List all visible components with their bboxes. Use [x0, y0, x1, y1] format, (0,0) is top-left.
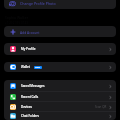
staticText: Devices [21, 105, 32, 109]
button[interactable]: Change Profile Photo [4, 0, 116, 9]
button[interactable]: My Profile [4, 43, 116, 55]
button[interactable]: Chat Folders [4, 112, 116, 120]
button[interactable]: Saved Messages [4, 80, 116, 92]
button[interactable]: Wallet [4, 62, 116, 72]
staticText: Wallet [21, 65, 30, 69]
staticText: Saved Messages [21, 84, 45, 88]
staticText: Chat Folders [21, 114, 39, 118]
staticText: Change Profile Photo [20, 1, 56, 6]
button[interactable]: Recent Calls [4, 92, 116, 102]
button[interactable]: Add Account [4, 26, 116, 37]
staticText: Recent Calls [21, 95, 39, 99]
staticText: NEW [35, 66, 41, 69]
staticText: My Profile [21, 47, 36, 51]
staticText: Scan QR [95, 105, 107, 109]
staticText: Add Account [20, 30, 40, 34]
button[interactable]: Devices [4, 102, 116, 112]
